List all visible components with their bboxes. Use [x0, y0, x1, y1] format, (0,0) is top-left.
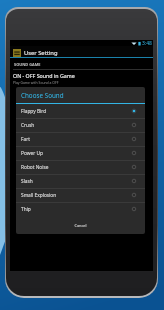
button[interactable]: Robot Noise [16, 160, 145, 174]
button[interactable]: Power Up [16, 146, 145, 160]
button[interactable]: Crush [16, 118, 145, 132]
staticText: ON - OFF Sound in Game [13, 72, 75, 79]
button[interactable]: Fart [16, 132, 145, 146]
staticText: Fart [21, 136, 131, 143]
staticText: Play Game with Sound a OFF [13, 80, 59, 85]
button[interactable]: User Setting [10, 46, 153, 57]
staticText: Cancel [74, 223, 87, 228]
button[interactable]: Thip [16, 202, 145, 216]
staticText: Crush [21, 122, 131, 129]
staticText: Power Up [21, 150, 131, 157]
button[interactable]: Slash [16, 174, 145, 188]
staticText: Thip [21, 206, 131, 213]
staticText: Small Explosion [21, 192, 131, 199]
staticText: User Setting [24, 49, 58, 57]
staticText: Choose Sound [21, 91, 64, 100]
staticText: SOUND GAME [14, 62, 41, 67]
staticText: Slash [21, 178, 131, 185]
button[interactable]: Small Explosion [16, 188, 145, 202]
staticText: Robot Noise [21, 164, 131, 171]
staticText: Flappy Bird [21, 108, 131, 115]
staticText: 3:48 [142, 40, 152, 46]
button[interactable]: Cancel [58, 219, 103, 232]
button[interactable]: Flappy Bird [16, 104, 145, 118]
button[interactable]: ON - OFF Sound in Game [10, 70, 153, 85]
